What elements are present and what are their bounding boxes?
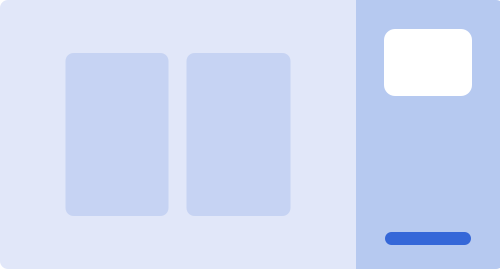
button[interactable]: Detail card [384,29,472,96]
button[interactable]: Primary action [385,232,471,245]
